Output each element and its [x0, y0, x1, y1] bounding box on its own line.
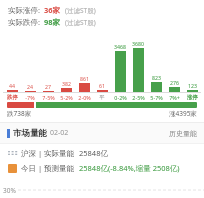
staticText: 382	[62, 80, 71, 87]
staticText: 98家	[44, 17, 61, 27]
staticText: 44	[9, 82, 15, 89]
staticText: 市场量能	[13, 128, 47, 139]
staticText: 0-2%	[114, 94, 127, 101]
staticText: 3468	[114, 43, 126, 50]
staticText: 跌停	[7, 94, 18, 101]
staticText: 24	[27, 83, 33, 90]
staticText: 27	[45, 83, 51, 90]
button[interactable]: 市场量能	[0, 123, 204, 143]
staticText: 实际跌停:	[8, 17, 41, 27]
button[interactable]: 沪深 | 实际量能	[0, 148, 204, 158]
staticText: 跌738家	[7, 109, 32, 118]
staticText: 涨4395家	[169, 109, 197, 118]
staticText: 861	[80, 75, 89, 82]
staticText: 7-5%	[42, 94, 55, 101]
staticText: (过滤ST股)	[65, 18, 96, 27]
staticText: 2-0%	[78, 94, 91, 101]
button[interactable]: 涨跌比例	[7, 102, 197, 108]
staticText: 2-5%	[132, 94, 145, 101]
staticText: 历史量能	[169, 129, 197, 138]
staticText: 3680	[132, 40, 144, 47]
staticText: 823	[152, 74, 161, 81]
staticText: 平	[99, 94, 105, 101]
staticText: 25848亿	[79, 148, 108, 158]
staticText: 276	[170, 79, 179, 86]
staticText: 61	[99, 82, 105, 89]
staticText: 25848亿(-8.84%,缩量 2508亿)	[79, 163, 180, 173]
staticText: 今日 | 预测量能	[21, 163, 75, 173]
staticText: 实际涨停:	[8, 5, 41, 15]
staticText: 36家	[44, 5, 61, 15]
staticText: (过滤ST股)	[65, 6, 96, 15]
button[interactable]: 今日 | 预测量能	[0, 163, 204, 173]
staticText: -7%	[25, 94, 35, 101]
staticText: 02-02	[50, 128, 69, 138]
staticText: 5-7%	[150, 94, 163, 101]
staticText: 123	[188, 82, 197, 89]
staticText: 涨停	[187, 94, 198, 101]
staticText: 7%+	[169, 94, 180, 101]
staticText: 5-2%	[60, 94, 73, 101]
staticText: 沪深 | 实际量能	[21, 148, 75, 158]
staticText: 30%	[3, 186, 16, 195]
